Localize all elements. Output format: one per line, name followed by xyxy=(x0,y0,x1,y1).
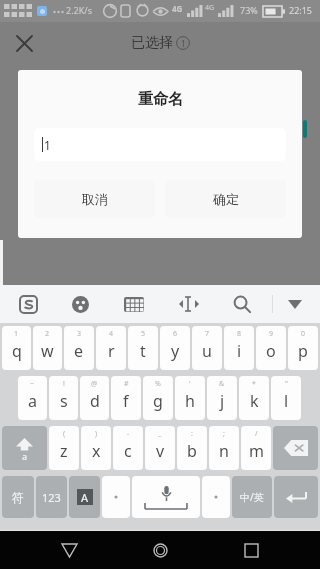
staticText: _ xyxy=(158,429,162,439)
staticText: 22:15 xyxy=(289,4,313,16)
button[interactable]: * xyxy=(239,376,269,420)
button[interactable]: & xyxy=(207,376,237,420)
staticText: p xyxy=(298,340,308,362)
staticText: 6 xyxy=(173,329,178,339)
button[interactable]: 中/英 xyxy=(232,476,272,518)
staticText: 取消 xyxy=(82,191,108,207)
button[interactable]: @ xyxy=(80,376,109,420)
button[interactable]: ~ xyxy=(18,376,47,420)
button[interactable]: ; xyxy=(209,426,239,470)
staticText: % xyxy=(155,379,161,389)
staticText: 2.2K/s xyxy=(66,4,92,16)
staticText: w xyxy=(41,340,54,362)
staticText: ~ xyxy=(30,379,35,389)
staticText: 73% xyxy=(240,4,258,16)
button[interactable]: : xyxy=(177,426,207,470)
button[interactable]: 2 xyxy=(33,326,62,370)
staticText: u xyxy=(202,340,212,362)
button[interactable]: 3 xyxy=(64,326,94,370)
button[interactable]: 9 xyxy=(256,326,286,370)
button[interactable]: 符 xyxy=(2,476,34,518)
staticText: z xyxy=(60,440,68,462)
staticText: 重命名 xyxy=(138,90,183,109)
staticText: 1 xyxy=(181,38,186,49)
staticText: ; xyxy=(223,429,225,439)
button[interactable]: Emoji xyxy=(64,288,96,320)
button[interactable]: Search xyxy=(226,288,258,320)
button[interactable]: " xyxy=(271,376,301,420)
button[interactable]: ' xyxy=(175,376,205,420)
staticText: - xyxy=(127,429,130,439)
staticText: 2 xyxy=(45,329,50,339)
staticText: ( xyxy=(63,429,66,439)
staticText: a xyxy=(22,450,28,462)
button[interactable]: _ xyxy=(145,426,175,470)
staticText: A xyxy=(81,490,89,505)
button[interactable]: - xyxy=(113,426,143,470)
staticText: r xyxy=(108,340,115,362)
staticText: a xyxy=(28,390,37,412)
button[interactable]: Hide keyboard xyxy=(279,288,311,320)
button[interactable]: Space and voice input xyxy=(132,476,200,518)
button[interactable]: ! xyxy=(49,376,78,420)
button[interactable]: Close xyxy=(6,25,42,61)
staticText: 1 xyxy=(44,137,51,153)
button[interactable]: ) xyxy=(81,426,111,470)
button[interactable]: Key xyxy=(274,476,318,518)
button[interactable]: 6 xyxy=(160,326,190,370)
button[interactable]: # xyxy=(111,376,141,420)
button[interactable]: Punctuation xyxy=(202,476,230,518)
staticText: " xyxy=(285,379,288,389)
button[interactable]: 1 xyxy=(2,326,31,370)
button[interactable]: 7 xyxy=(192,326,222,370)
staticText: : xyxy=(191,429,193,439)
button[interactable]: Recent apps xyxy=(229,531,273,569)
staticText: 符 xyxy=(12,490,24,505)
staticText: / xyxy=(255,429,258,439)
button[interactable]: 123 xyxy=(36,476,67,518)
button[interactable]: ( xyxy=(49,426,79,470)
button[interactable]: Key xyxy=(69,476,100,518)
staticText: 3 xyxy=(77,329,82,339)
button[interactable]: 8 xyxy=(224,326,254,370)
button[interactable]: Key xyxy=(2,426,47,470)
button[interactable]: 4 xyxy=(96,326,126,370)
button[interactable]: Keyboard layout xyxy=(118,288,150,320)
staticText: 9 xyxy=(269,329,274,339)
staticText: ! xyxy=(63,379,65,389)
staticText: * xyxy=(252,379,256,389)
staticText: y xyxy=(171,340,180,362)
button[interactable]: Move cursor xyxy=(173,288,205,320)
staticText: 7 xyxy=(205,329,210,339)
staticText: 123 xyxy=(42,490,61,505)
staticText: h xyxy=(185,390,195,412)
staticText: 0 xyxy=(301,329,306,339)
staticText: 中/英 xyxy=(240,490,264,504)
staticText: c xyxy=(124,440,132,462)
staticText: ' xyxy=(189,379,191,389)
button[interactable]: 5 xyxy=(128,326,158,370)
staticText: e xyxy=(74,340,84,362)
staticText: 8 xyxy=(237,329,242,339)
button[interactable]: 1 xyxy=(34,128,286,161)
button[interactable]: Key xyxy=(273,426,318,470)
button[interactable]: / xyxy=(241,426,271,470)
staticText: q xyxy=(12,340,22,362)
staticText: i xyxy=(237,340,242,362)
staticText: 4G xyxy=(172,3,183,14)
button[interactable]: 取消 xyxy=(34,180,155,218)
button[interactable]: 0 xyxy=(288,326,318,370)
staticText: 4 xyxy=(109,329,114,339)
staticText: @ xyxy=(91,379,98,389)
button[interactable]: Home xyxy=(138,531,182,569)
button[interactable]: Sogou input settings xyxy=(12,288,44,320)
staticText: f xyxy=(123,390,129,412)
staticText: v xyxy=(156,440,165,462)
staticText: k xyxy=(250,390,259,412)
staticText: 已选择 xyxy=(131,34,173,52)
button[interactable]: % xyxy=(143,376,173,420)
staticText: b xyxy=(187,440,197,462)
button[interactable]: Back xyxy=(47,531,91,569)
button[interactable]: Punctuation xyxy=(102,476,130,518)
button[interactable]: 确定 xyxy=(165,180,286,218)
